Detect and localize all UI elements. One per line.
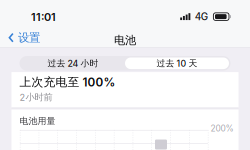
button[interactable]: 过去 10 天 xyxy=(125,57,229,69)
staticText: 11:01 xyxy=(31,10,56,24)
button[interactable]: 过去 24 小时 xyxy=(21,57,125,69)
staticText: 2小时前 xyxy=(19,91,52,103)
staticText: 过去 24 小时 xyxy=(47,58,98,69)
staticText: 电池用量 xyxy=(19,115,55,127)
button[interactable]: 设置 xyxy=(0,25,48,48)
staticText: 200% xyxy=(210,123,233,134)
staticText: 电池 xyxy=(114,33,136,47)
staticText: 4G xyxy=(195,11,208,23)
staticText: 上次充电至 100% xyxy=(19,75,115,89)
staticText: 设置 xyxy=(18,30,40,45)
staticText: 过去 10 天 xyxy=(156,58,197,69)
